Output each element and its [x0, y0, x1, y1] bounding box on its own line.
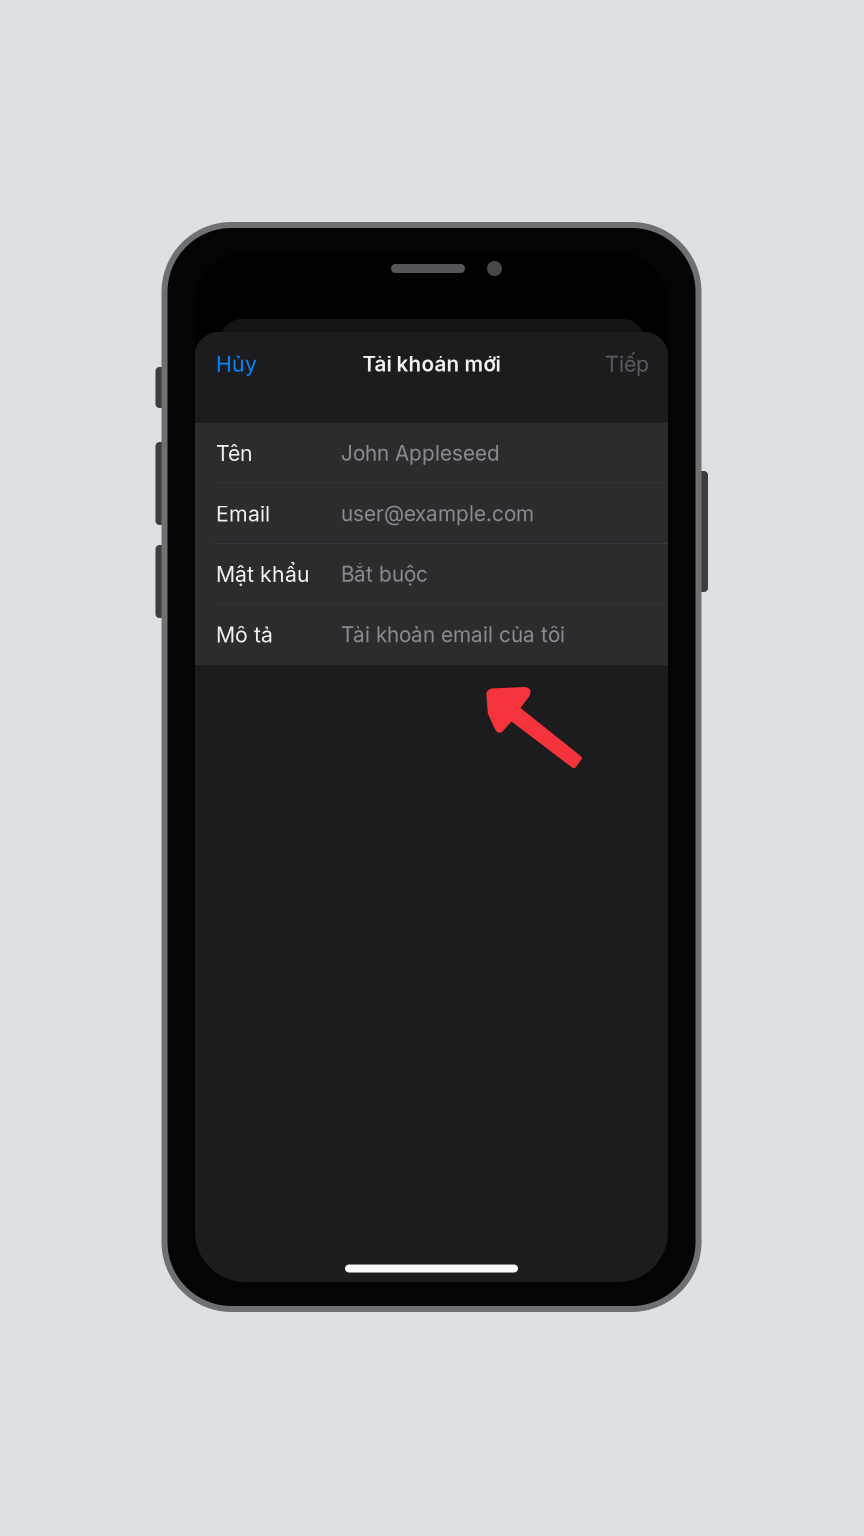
button[interactable]: Email	[195, 483, 668, 544]
staticText: Tên	[216, 440, 253, 466]
button[interactable]: Hủy	[216, 351, 257, 377]
staticText: Tiếp	[605, 351, 649, 377]
staticText: John Appleseed	[341, 441, 500, 466]
button[interactable]: Mô tả	[195, 604, 668, 665]
button[interactable]: Tên	[195, 423, 668, 483]
staticText: Tài khoản mới	[362, 351, 500, 376]
staticText: Tài khoản email của tôi	[341, 622, 565, 647]
staticText: Hủy	[216, 351, 257, 377]
staticText: Mô tả	[216, 622, 273, 648]
button[interactable]: Mật khẩu	[195, 544, 668, 604]
staticText: user@example.com	[341, 501, 534, 526]
staticText: Mật khẩu	[216, 561, 310, 587]
staticText: Bắt buộc	[341, 562, 428, 587]
button[interactable]: Tiếp	[605, 351, 649, 377]
staticText: Email	[216, 501, 270, 527]
